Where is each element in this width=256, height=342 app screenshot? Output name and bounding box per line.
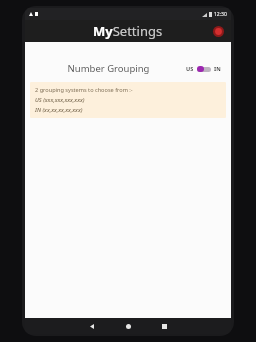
staticText: IN — [214, 65, 221, 72]
staticText: US — [186, 65, 194, 72]
staticText: MySettings — [93, 22, 163, 40]
button[interactable]: Recent apps — [156, 318, 172, 334]
button[interactable]: US — [184, 63, 223, 74]
staticText: US (xxx,xxx,xxx,xxx) — [35, 96, 85, 104]
button[interactable]: Back — [84, 318, 100, 334]
button[interactable]: Record — [212, 25, 225, 38]
staticText: 2 grouping systems to choose from :- — [35, 86, 133, 94]
button[interactable]: 2 grouping systems to choose from :- — [30, 82, 226, 118]
staticText: 12:30 — [214, 11, 227, 18]
staticText: Number Grouping — [33, 62, 184, 75]
staticText: IN (xx,xx,xx,xx,xxx) — [35, 106, 83, 114]
button[interactable]: Home — [120, 318, 136, 334]
